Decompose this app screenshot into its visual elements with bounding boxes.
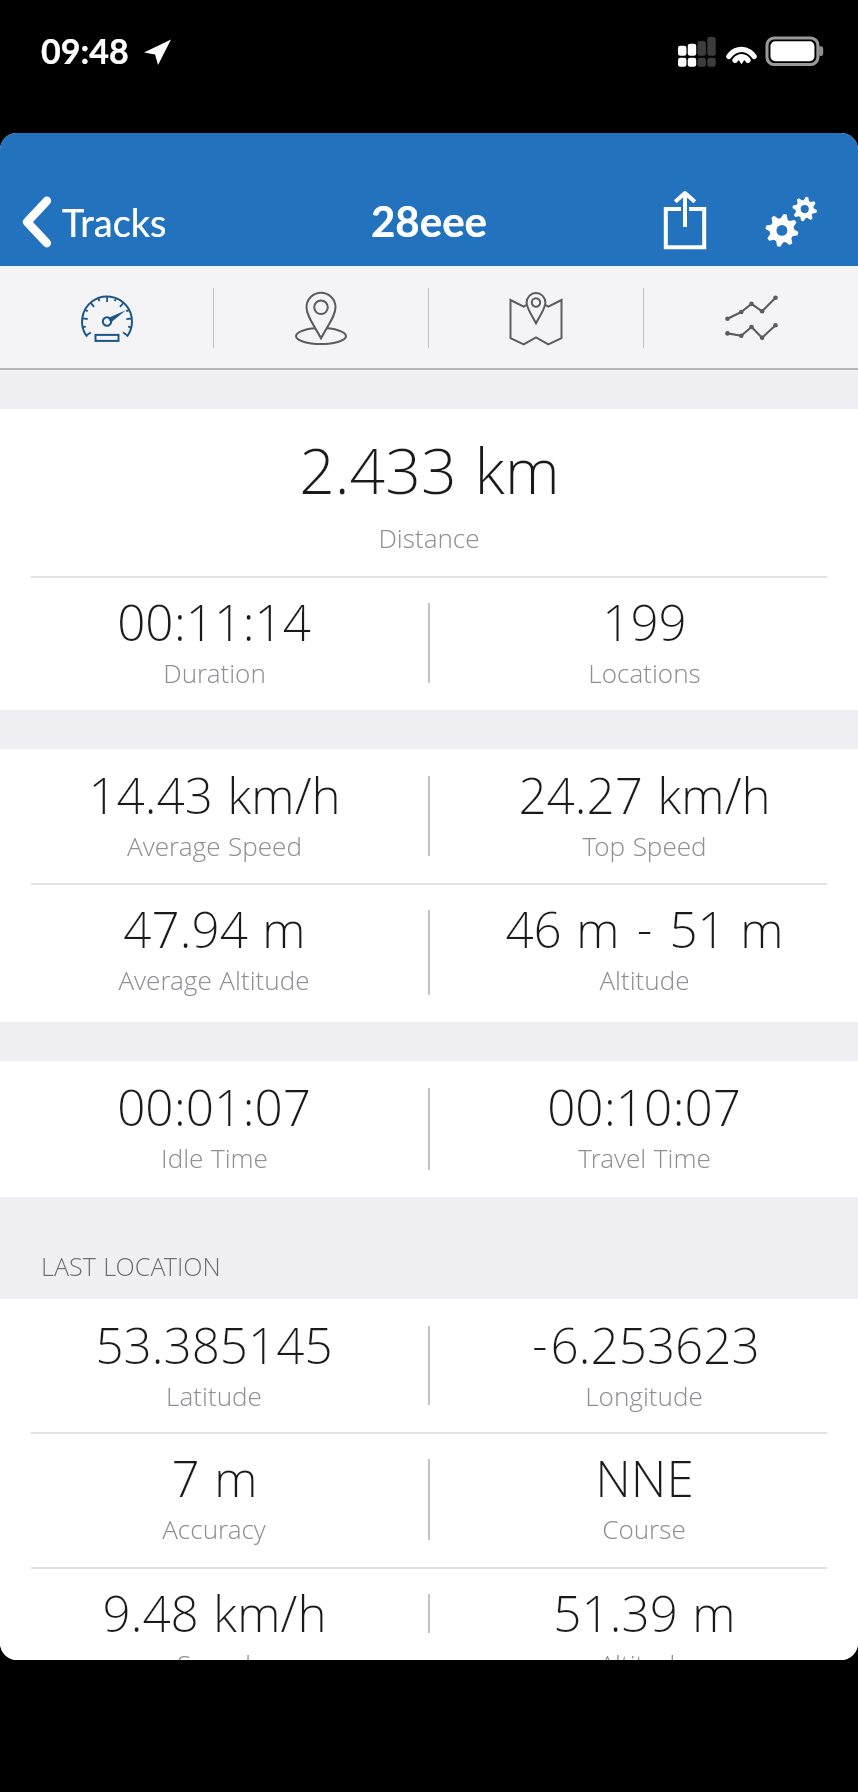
button[interactable]: 7 m [0, 1432, 428, 1567]
staticText: Accuracy [162, 1511, 266, 1556]
staticText: Speed [177, 1646, 251, 1660]
button[interactable]: 00:01:07 [0, 1061, 428, 1197]
staticText: Latitude [166, 1378, 262, 1423]
staticText: 47.94 m [123, 895, 306, 980]
button[interactable]: Map [429, 266, 643, 370]
staticText: Altitude [599, 1646, 690, 1660]
button[interactable]: Locations [214, 266, 428, 370]
staticText: LAST LOCATION [41, 1249, 221, 1292]
button[interactable]: 24.27 km/h [430, 749, 858, 883]
button[interactable]: Settings [732, 177, 824, 266]
button[interactable]: 51.39 m [430, 1567, 858, 1660]
button[interactable]: Dashboard [0, 266, 213, 370]
button[interactable]: -6.253623 [430, 1299, 858, 1432]
button[interactable]: 46 m - 51 m [430, 883, 858, 1022]
staticText: 199 [602, 588, 687, 673]
staticText: 51.39 m [553, 1579, 736, 1660]
staticText: 24.27 km/h [518, 761, 771, 846]
staticText: Locations [588, 655, 701, 700]
staticText: 2.433 km [299, 427, 560, 535]
staticText: 28eee [371, 196, 488, 246]
button[interactable]: 9.48 km/h [0, 1567, 428, 1660]
staticText: 7 m [171, 1444, 258, 1529]
button[interactable]: Share [639, 177, 731, 266]
button[interactable]: Chart [644, 266, 858, 370]
staticText: -6.253623 [529, 1311, 760, 1396]
button[interactable]: 00:10:07 [430, 1061, 858, 1197]
staticText: 00:01:07 [117, 1073, 311, 1158]
staticText: NNE [595, 1444, 694, 1529]
staticText: 00:10:07 [547, 1073, 741, 1158]
button[interactable]: 53.385145 [0, 1299, 428, 1432]
staticText: 09:48 [41, 30, 129, 71]
staticText: 00:11:14 [117, 588, 311, 673]
staticText: Idle Time [161, 1140, 268, 1185]
button[interactable]: NNE [430, 1432, 858, 1567]
staticText: Average Altitude [118, 962, 310, 1007]
staticText: Travel Time [578, 1140, 711, 1185]
button[interactable]: 199 [430, 576, 858, 710]
staticText: Duration [163, 655, 266, 700]
staticText: Altitude [599, 962, 690, 1007]
button[interactable]: 47.94 m [0, 883, 428, 1022]
staticText: 53.385145 [95, 1311, 333, 1396]
button[interactable]: 00:11:14 [0, 576, 428, 710]
staticText: Distance [378, 520, 480, 565]
button[interactable]: 14.43 km/h [0, 749, 428, 883]
button[interactable]: Tracks [18, 189, 173, 255]
staticText: Average Speed [127, 828, 302, 873]
staticText: Longitude [585, 1378, 703, 1423]
staticText: Course [602, 1511, 686, 1556]
staticText: 9.48 km/h [102, 1579, 327, 1660]
staticText: Top Speed [582, 828, 707, 873]
staticText: 14.43 km/h [88, 761, 341, 846]
staticText: Tracks [62, 199, 167, 245]
staticText: 46 m - 51 m [505, 895, 784, 980]
